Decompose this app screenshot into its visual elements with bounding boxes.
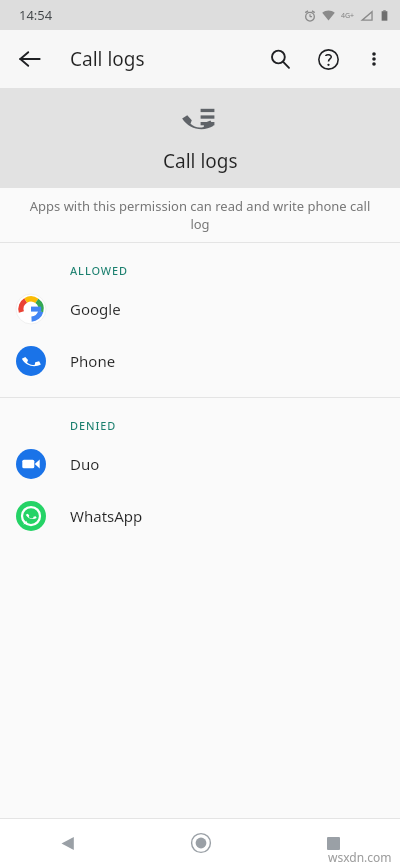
- button[interactable]: Back: [6, 35, 54, 83]
- button[interactable]: Back: [0, 819, 134, 867]
- button[interactable]: Search: [256, 35, 304, 83]
- button[interactable]: Google: [0, 283, 400, 335]
- button[interactable]: Phone: [0, 335, 400, 387]
- staticText: 14:54: [19, 6, 53, 24]
- button[interactable]: Help: [304, 35, 352, 83]
- staticText: Duo: [70, 454, 100, 474]
- staticText: DENIED: [70, 418, 117, 433]
- staticText: Phone: [70, 351, 116, 371]
- staticText: 4G+: [341, 11, 355, 21]
- staticText: Apps with this permission can read and w…: [24, 197, 376, 233]
- staticText: WhatsApp: [70, 506, 143, 526]
- staticText: Call logs: [163, 148, 238, 174]
- button[interactable]: More options: [352, 37, 396, 81]
- button[interactable]: Home: [134, 819, 267, 867]
- button[interactable]: Duo: [0, 438, 400, 490]
- staticText: wsxdn.com: [328, 849, 392, 865]
- staticText: Google: [70, 299, 121, 319]
- staticText: ALLOWED: [70, 263, 129, 278]
- button[interactable]: Recents: [267, 819, 400, 867]
- button[interactable]: WhatsApp: [0, 490, 400, 542]
- staticText: Call logs: [70, 46, 145, 72]
